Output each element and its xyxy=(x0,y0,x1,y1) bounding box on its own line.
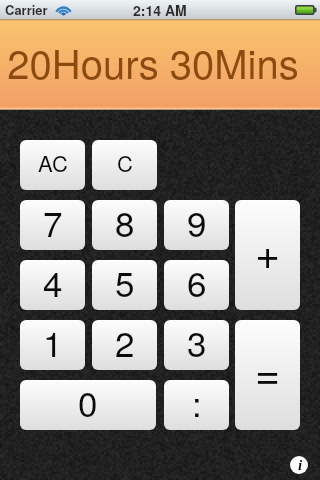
button[interactable]: = xyxy=(235,320,300,430)
button[interactable]: C xyxy=(92,140,157,190)
staticText: 2 xyxy=(115,320,135,367)
button[interactable]: 2 xyxy=(92,320,157,370)
staticText: i xyxy=(298,457,303,474)
staticText: 6 xyxy=(187,260,207,307)
staticText: : xyxy=(192,380,202,427)
staticText: 2:14 AM xyxy=(133,0,187,19)
button[interactable]: 0 xyxy=(20,380,156,430)
staticText: 8 xyxy=(115,200,135,247)
staticText: 5 xyxy=(115,260,135,307)
staticText: Carrier xyxy=(5,0,48,19)
staticText: 20Hours 30Mins xyxy=(7,33,299,90)
button[interactable]: Info xyxy=(290,456,308,474)
button[interactable]: 5 xyxy=(92,260,157,310)
button[interactable]: 1 xyxy=(20,320,85,370)
staticText: = xyxy=(255,340,281,402)
staticText: 3 xyxy=(187,320,207,367)
button[interactable]: AC xyxy=(20,140,85,190)
button[interactable]: 7 xyxy=(20,200,85,250)
staticText: 0 xyxy=(78,380,98,427)
staticText: 9 xyxy=(187,200,207,247)
button[interactable]: 6 xyxy=(164,260,229,310)
button[interactable]: + xyxy=(235,200,300,310)
button[interactable]: 8 xyxy=(92,200,157,250)
button[interactable]: : xyxy=(164,380,229,430)
staticText: AC xyxy=(38,147,68,179)
staticText: + xyxy=(255,220,281,282)
staticText: 1 xyxy=(43,320,63,367)
button[interactable]: 3 xyxy=(164,320,229,370)
staticText: 4 xyxy=(43,260,63,307)
staticText: C xyxy=(117,147,133,179)
button[interactable]: 9 xyxy=(164,200,229,250)
button[interactable]: 4 xyxy=(20,260,85,310)
staticText: 7 xyxy=(43,200,63,247)
